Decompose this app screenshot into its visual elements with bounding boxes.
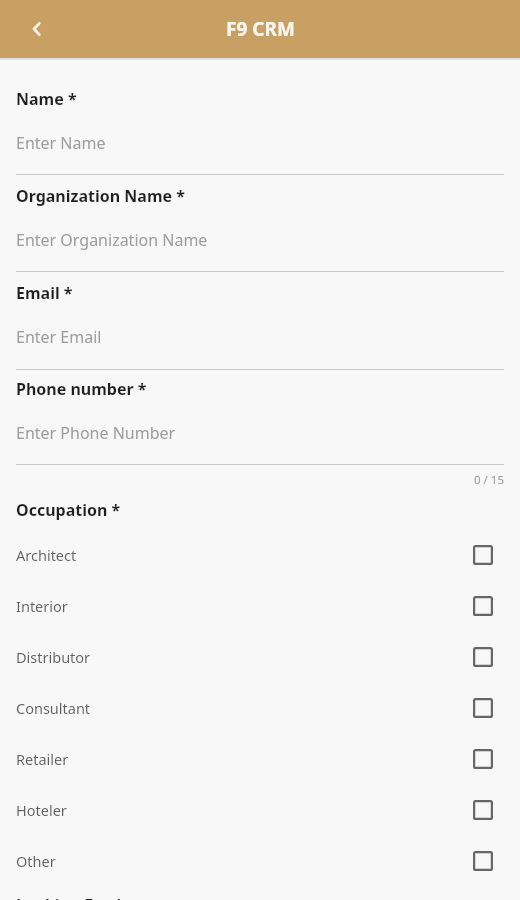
staticText: F9 CRM xyxy=(226,16,295,42)
staticText: 0 / 15 xyxy=(474,472,504,488)
button[interactable]: Enter Phone Number xyxy=(16,422,504,444)
staticText: Interior xyxy=(16,596,473,616)
other: Select Architect xyxy=(473,545,493,565)
other: Select Hoteler xyxy=(473,800,493,820)
button[interactable]: Consultant xyxy=(0,682,520,733)
staticText: Enter Organization Name xyxy=(16,229,208,251)
button[interactable]: Hoteler xyxy=(0,784,520,835)
other: Select Retailer xyxy=(473,749,493,769)
staticText: Architect xyxy=(16,545,473,565)
button[interactable]: Architect xyxy=(0,529,520,580)
other: Select Other xyxy=(473,851,493,871)
staticText: Phone number * xyxy=(16,378,147,400)
staticText: Enter Name xyxy=(16,132,106,154)
staticText: Organization Name * xyxy=(16,185,185,207)
staticText: Name * xyxy=(16,88,77,110)
button[interactable]: Distributor xyxy=(0,631,520,682)
staticText: Enter Email xyxy=(16,326,102,348)
staticText: Other xyxy=(16,851,473,871)
staticText: Hoteler xyxy=(16,800,473,820)
button[interactable]: Enter Email xyxy=(16,326,504,348)
staticText: Email * xyxy=(16,282,73,304)
staticText: Looking For * xyxy=(16,894,124,900)
other: Select Distributor xyxy=(473,647,493,667)
staticText: Enter Phone Number xyxy=(16,422,176,444)
button[interactable]: Back xyxy=(16,7,60,51)
button[interactable]: Interior xyxy=(0,580,520,631)
other: Select Interior xyxy=(473,596,493,616)
other: Select Consultant xyxy=(473,698,493,718)
button[interactable]: Enter Organization Name xyxy=(16,229,504,251)
staticText: Retailer xyxy=(16,749,473,769)
staticText: Occupation * xyxy=(16,499,121,521)
button[interactable]: Retailer xyxy=(0,733,520,784)
button[interactable]: Other xyxy=(0,835,520,886)
button[interactable]: Enter Name xyxy=(16,132,504,154)
staticText: Consultant xyxy=(16,698,473,718)
staticText: Distributor xyxy=(16,647,473,667)
